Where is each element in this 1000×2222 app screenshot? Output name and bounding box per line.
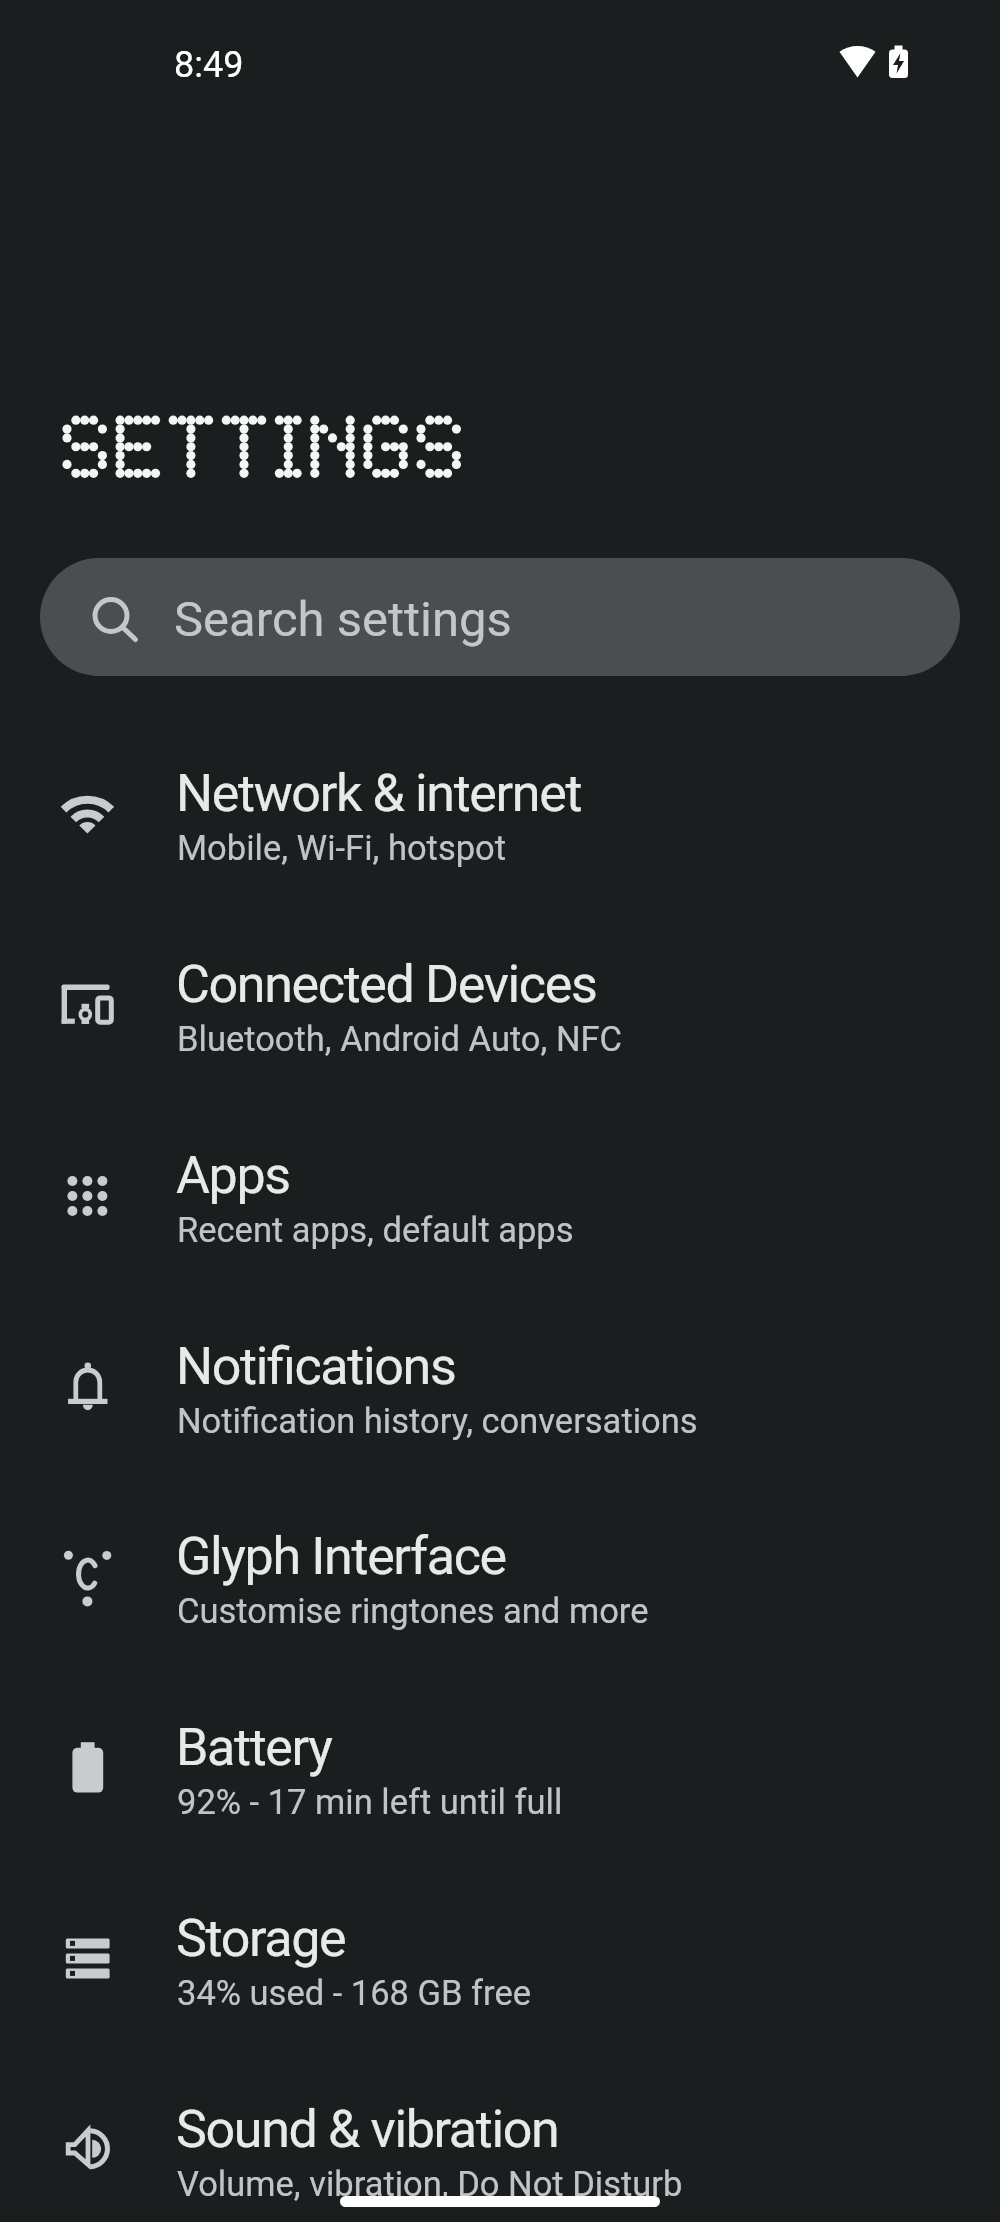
staticText: Glyph Interface — [176, 1526, 506, 1587]
staticText: Apps — [176, 1145, 290, 1206]
button[interactable]: Apps — [0, 1102, 1000, 1292]
staticText: Connected Devices — [176, 954, 597, 1015]
staticText: Mobile, Wi-Fi, hotspot — [177, 828, 507, 868]
staticText: Battery — [176, 1717, 332, 1778]
button[interactable]: Battery — [0, 1674, 1000, 1864]
staticText: 92% - 17 min left until full — [177, 1782, 563, 1822]
button[interactable]: Search settings — [40, 558, 960, 676]
staticText: Bluetooth, Android Auto, NFC — [177, 1019, 623, 1059]
staticText: Network & internet — [176, 763, 582, 824]
staticText: Sound & vibration — [176, 2099, 559, 2160]
staticText: Notification history, conversations — [177, 1401, 698, 1441]
staticText: Notifications — [176, 1336, 456, 1397]
staticText: Recent apps, default apps — [177, 1210, 574, 1250]
staticText: Search settings — [174, 591, 512, 648]
staticText: 8:49 — [174, 44, 244, 86]
button[interactable]: Glyph Interface — [0, 1483, 1000, 1673]
button[interactable]: Storage — [0, 1865, 1000, 2055]
staticText: Customise ringtones and more — [177, 1591, 649, 1631]
button[interactable]: Network & internet — [0, 720, 1000, 910]
button[interactable]: Connected Devices — [0, 911, 1000, 1101]
staticText: 34% used - 168 GB free — [177, 1973, 532, 2013]
button[interactable]: Sound & vibration — [0, 2056, 1000, 2222]
button[interactable]: Notifications — [0, 1293, 1000, 1483]
staticText: Volume, vibration, Do Not Disturb — [177, 2164, 683, 2204]
staticText: Storage — [176, 1908, 346, 1969]
